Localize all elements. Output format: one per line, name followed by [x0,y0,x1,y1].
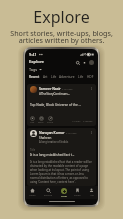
button[interactable]: You [89,188,94,197]
button[interactable]: Saved [74,188,81,197]
staticText: 9:41 [29,52,37,57]
button[interactable]: Profile [89,60,94,65]
staticText: 5 hrs ago [66,131,77,134]
staticText: Home [29,194,36,197]
staticText: Reply [38,121,44,124]
staticText: Title [30,148,36,152]
staticText: Like [30,121,35,124]
button[interactable]: More options [89,86,93,90]
button[interactable]: Life [78,75,84,79]
staticText: A long treatise of India's [39,140,69,144]
button[interactable]: Write [61,188,67,198]
button[interactable]: Like [30,116,35,124]
button[interactable]: Adventure [59,75,75,79]
button[interactable]: Narayan Kumar [27,128,96,186]
button[interactable]: Home [29,188,36,197]
button[interactable]: Notifications [82,60,87,65]
staticText: It is a long established fact t... [30,153,75,157]
button[interactable]: Tags [29,67,42,72]
button[interactable]: Life [51,75,57,79]
staticText: Narayan Kumar [39,130,65,135]
staticText: 2 hrs ago [62,87,73,90]
button[interactable]: More options [89,130,93,134]
staticText: 14 likes [72,119,81,122]
button[interactable]: Share [47,116,53,124]
staticText: Sameer Nasir [39,86,61,91]
staticText: You [90,194,94,197]
button[interactable]: HDF [87,75,94,79]
staticText: Shaheen [39,136,52,140]
staticText: 3 replies [83,119,93,122]
staticText: Saved [74,194,81,197]
button[interactable]: Sameer Nasir [27,84,96,126]
button[interactable]: Reply [38,116,44,124]
staticText: Share [47,121,53,124]
staticText: Top Node, Block Universe of the ... [30,103,82,107]
staticText: It is a long established fact that a rea… [30,160,93,184]
button[interactable]: Search [75,60,80,65]
button[interactable]: Explore [44,188,53,197]
button[interactable]: Art [43,75,48,79]
button[interactable]: Recent [29,75,40,79]
button[interactable]: Explore [29,59,44,65]
staticText: Explore [44,194,53,197]
staticText: #TheStoryContinues... [39,92,71,96]
staticText: Tags [29,67,38,72]
staticText: Write [61,195,67,198]
staticText: Short stories, write-ups, blogs, article… [0,28,123,45]
staticText: Explore [0,6,123,28]
